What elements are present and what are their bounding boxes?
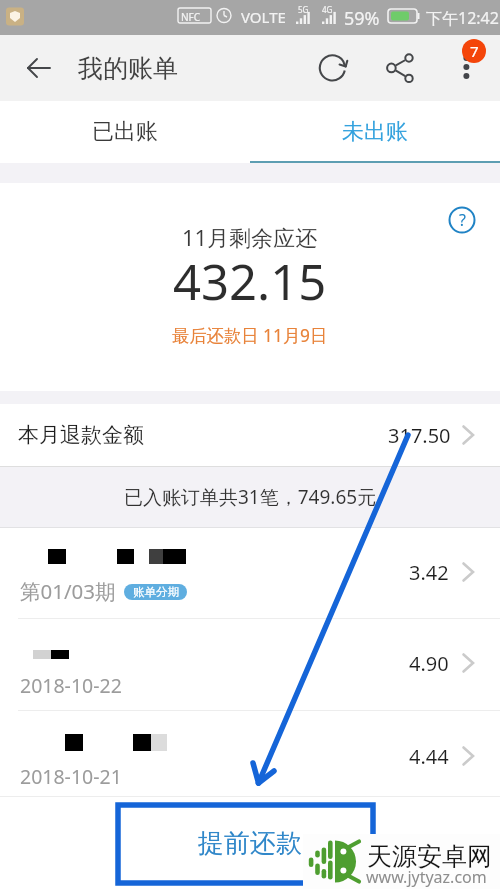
staticText: 432.15 <box>173 248 327 315</box>
staticText: 7 <box>470 41 479 61</box>
staticText: 已出账 <box>92 118 158 146</box>
staticText: 第01/03期 <box>20 577 116 605</box>
staticText: 最后还款日 11月9日 <box>172 324 328 348</box>
button[interactable]: 已出账 <box>0 101 250 163</box>
button[interactable]: 2018-10-21 <box>0 711 500 797</box>
staticText: 4.44 <box>409 743 449 770</box>
staticText: ? <box>459 209 466 231</box>
button[interactable]: 本月退款金额 <box>0 404 500 466</box>
staticText: 账单分期 <box>133 585 179 599</box>
staticText: NFC <box>181 10 201 24</box>
button[interactable]: More options <box>450 43 484 77</box>
staticText: 我的账单 <box>78 53 178 84</box>
button[interactable]: 2018-10-22 <box>0 619 500 711</box>
staticText: 2018-10-21 <box>20 763 122 790</box>
staticText: 5G <box>298 4 309 15</box>
button[interactable]: 提前还款 <box>0 797 500 889</box>
button[interactable]: Refresh <box>310 46 355 91</box>
staticText: 59% <box>344 6 380 31</box>
staticText: 提前还款 <box>198 827 302 860</box>
staticText: VOLTE <box>241 7 286 27</box>
button[interactable]: Help <box>448 206 476 234</box>
staticText: www.jytyaz.com <box>366 866 487 888</box>
staticText: 未出账 <box>342 118 408 146</box>
staticText: 3.42 <box>409 559 449 586</box>
staticText: 本月退款金额 <box>18 422 144 448</box>
button[interactable]: Share <box>380 46 420 86</box>
staticText: 4.90 <box>409 650 449 677</box>
button[interactable]: Back <box>16 45 62 91</box>
staticText: 4G <box>322 4 333 15</box>
staticText: 天源安卓网 <box>367 841 492 872</box>
button[interactable]: 第01/03期 <box>0 528 500 619</box>
button[interactable]: 未出账 <box>250 101 500 163</box>
staticText: 11月剩余应还 <box>182 222 318 252</box>
staticText: 2018-10-22 <box>20 672 122 699</box>
staticText: 已入账订单共31笔，749.65元 <box>124 484 377 510</box>
staticText: 317.50 <box>388 422 451 449</box>
staticText: 下午12:42 <box>426 7 499 29</box>
